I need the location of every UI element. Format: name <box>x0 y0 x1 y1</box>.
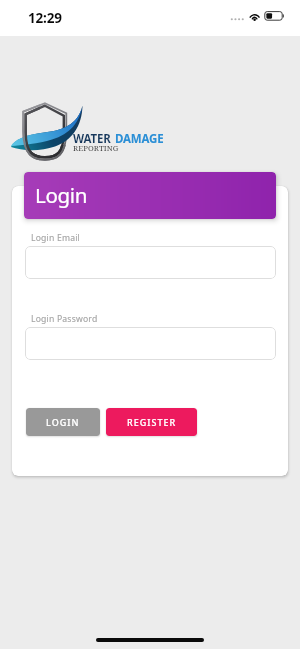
staticText: Login <box>35 181 88 209</box>
staticText: Login Password <box>31 313 98 325</box>
staticText: REPORTING <box>73 143 119 154</box>
button[interactable]: LOGIN <box>26 408 100 436</box>
staticText: REGISTER <box>127 416 177 428</box>
staticText: WATER <box>73 131 114 147</box>
other: Status icons <box>228 8 288 26</box>
button[interactable]: Login <box>24 172 276 219</box>
staticText: DAMAGE <box>115 131 164 147</box>
button[interactable]: REGISTER <box>106 408 197 436</box>
staticText: 12:29 <box>28 9 62 27</box>
staticText: Login Email <box>31 232 81 244</box>
staticText: LOGIN <box>46 416 80 428</box>
button[interactable] <box>25 246 276 279</box>
button[interactable] <box>25 327 276 360</box>
